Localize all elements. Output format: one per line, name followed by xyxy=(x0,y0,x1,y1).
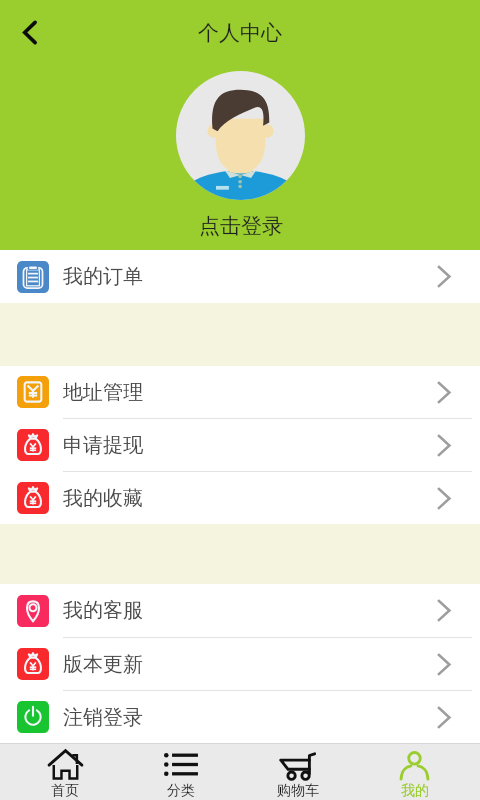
button[interactable]: 我的客服 xyxy=(0,584,480,637)
staticText: 我的订单 xyxy=(63,264,143,289)
button[interactable]: 我的收藏 xyxy=(0,472,480,524)
staticText: 分类 xyxy=(167,782,195,800)
button[interactable]: 分类 xyxy=(123,743,239,800)
button[interactable]: 注销登录 xyxy=(0,691,480,743)
button[interactable]: 申请提现 xyxy=(0,419,480,471)
staticText: 个人中心 xyxy=(198,20,282,46)
button[interactable]: 版本更新 xyxy=(0,638,480,690)
staticText: 地址管理 xyxy=(63,380,143,405)
staticText: 我的客服 xyxy=(63,598,143,623)
button[interactable]: Back xyxy=(9,11,51,53)
staticText: 注销登录 xyxy=(63,705,143,730)
staticText: 我的 xyxy=(401,782,429,800)
staticText: 首页 xyxy=(51,782,79,800)
button[interactable]: 我的订单 xyxy=(0,250,480,303)
staticText: 申请提现 xyxy=(63,433,143,458)
button[interactable]: 购物车 xyxy=(239,743,356,800)
staticText: 版本更新 xyxy=(63,652,143,677)
button[interactable]: 点击登录 xyxy=(199,213,283,239)
staticText: 购物车 xyxy=(277,782,319,800)
staticText: 我的收藏 xyxy=(63,486,143,511)
button[interactable]: 首页 xyxy=(7,743,123,800)
button[interactable]: 地址管理 xyxy=(0,366,480,418)
button[interactable]: 我的 xyxy=(356,743,473,800)
